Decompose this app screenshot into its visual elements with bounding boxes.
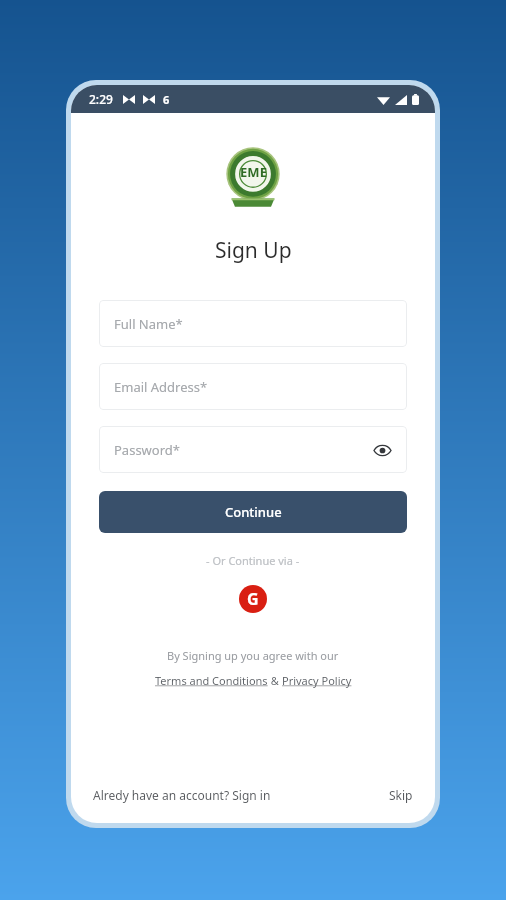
button[interactable]: Terms and Conditions: [155, 673, 268, 688]
button[interactable]: Full Name*: [99, 300, 407, 347]
staticText: Password*: [114, 441, 180, 459]
button[interactable]: Continue: [99, 491, 407, 533]
staticText: Sign Up: [215, 236, 292, 265]
button[interactable]: Skip: [389, 787, 413, 803]
staticText: Full Name*: [114, 315, 183, 333]
staticText: Skip: [389, 787, 413, 803]
staticText: - Or Continue via -: [206, 553, 300, 568]
staticText: 2:29: [89, 91, 113, 107]
button[interactable]: Alredy have an account? Sign in: [93, 787, 271, 803]
staticText: EME: [240, 163, 267, 181]
button[interactable]: Continue with Google: [238, 584, 268, 614]
staticText: 6: [163, 92, 170, 107]
staticText: Email Address*: [114, 378, 208, 396]
button[interactable]: Privacy Policy: [282, 673, 352, 688]
staticText: Alredy have an account? Sign in: [93, 787, 271, 803]
staticText: G: [247, 588, 259, 610]
staticText: By Signing up you agree with our: [167, 648, 339, 663]
staticText: &: [268, 673, 282, 688]
staticText: Continue: [225, 503, 282, 521]
button[interactable]: Show password: [370, 438, 394, 462]
staticText: Privacy Policy: [282, 673, 352, 688]
staticText: Terms and Conditions: [155, 673, 268, 688]
button[interactable]: Email Address*: [99, 363, 407, 410]
button[interactable]: Password*: [99, 426, 407, 473]
